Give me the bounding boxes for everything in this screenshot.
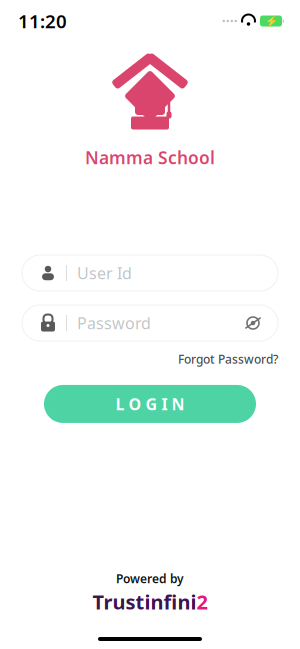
staticText: 2	[196, 588, 207, 615]
staticText: 11:20	[18, 9, 67, 33]
staticText: Powered by	[116, 570, 184, 586]
button[interactable]: User Id	[0, 255, 300, 291]
staticText: ⚡	[264, 15, 277, 27]
staticText: Forgot Password?	[178, 351, 278, 367]
staticText: L O G I N	[115, 393, 184, 414]
staticText: User Id	[77, 262, 132, 284]
staticText: Password	[77, 312, 151, 334]
button[interactable]: L O G I N	[44, 385, 256, 423]
button[interactable]: Password	[0, 305, 300, 341]
staticText: Trustinfini	[92, 588, 196, 615]
staticText: Namma School	[85, 146, 215, 169]
button[interactable]: Forgot Password?	[178, 347, 278, 371]
